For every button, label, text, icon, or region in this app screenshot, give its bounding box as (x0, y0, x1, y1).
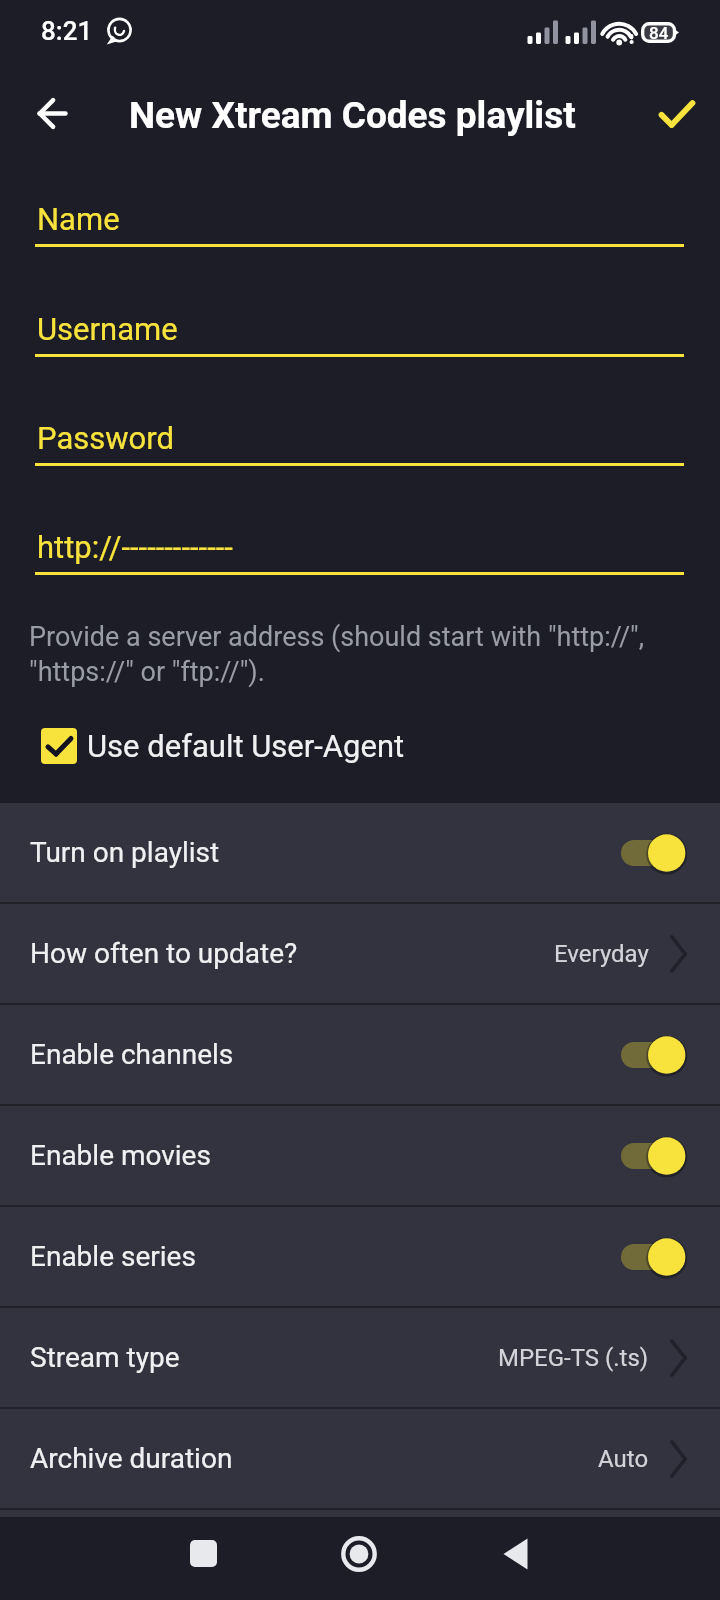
staticText: 84 (649, 23, 669, 43)
staticText: Everyday (554, 940, 649, 968)
button[interactable]: Home (319, 1517, 399, 1590)
staticText: Enable series (30, 1240, 196, 1273)
staticText: New Xtream Codes playlist (129, 94, 576, 137)
button[interactable]: Recent apps (163, 1517, 243, 1590)
staticText: Name (37, 201, 120, 237)
button[interactable]: Enable channels (0, 1005, 720, 1104)
button[interactable]: Toggle, on (621, 1032, 687, 1078)
button[interactable]: Enable series (0, 1207, 720, 1306)
button[interactable]: Stream type (0, 1308, 720, 1407)
staticText: http://------------- (37, 529, 233, 565)
staticText: How often to update? (30, 937, 298, 970)
button[interactable]: Password (35, 413, 684, 466)
button[interactable]: Back (21, 82, 83, 144)
button[interactable]: Username (35, 304, 684, 357)
button[interactable]: Use default User-Agent (32, 714, 482, 778)
button[interactable]: How often to update? (0, 904, 720, 1003)
staticText: Stream type (30, 1341, 180, 1374)
staticText: Enable channels (30, 1038, 234, 1071)
staticText: Username (37, 311, 178, 347)
staticText: Enable movies (30, 1139, 211, 1172)
staticText: Password (37, 420, 174, 456)
staticText: Archive duration (30, 1442, 233, 1475)
button[interactable]: Archive duration (0, 1409, 720, 1508)
button[interactable]: http://------------- (35, 522, 684, 575)
staticText: Use default User-Agent (87, 728, 405, 764)
button[interactable]: Save (644, 81, 710, 147)
staticText: Turn on playlist (30, 836, 220, 869)
button[interactable]: Toggle, on (621, 830, 687, 876)
button[interactable]: Toggle, on (621, 1234, 687, 1280)
button[interactable]: Name (35, 194, 684, 247)
staticText: 8:21 (41, 16, 93, 46)
staticText: Provide a server address (should start w… (29, 621, 719, 687)
staticText: Auto (598, 1445, 649, 1473)
button[interactable]: Toggle, on (621, 1133, 687, 1179)
button[interactable]: Enable movies (0, 1106, 720, 1205)
button[interactable]: Back (475, 1517, 555, 1590)
staticText: MPEG-TS (.ts) (498, 1344, 649, 1372)
button[interactable]: Turn on playlist (0, 803, 720, 902)
